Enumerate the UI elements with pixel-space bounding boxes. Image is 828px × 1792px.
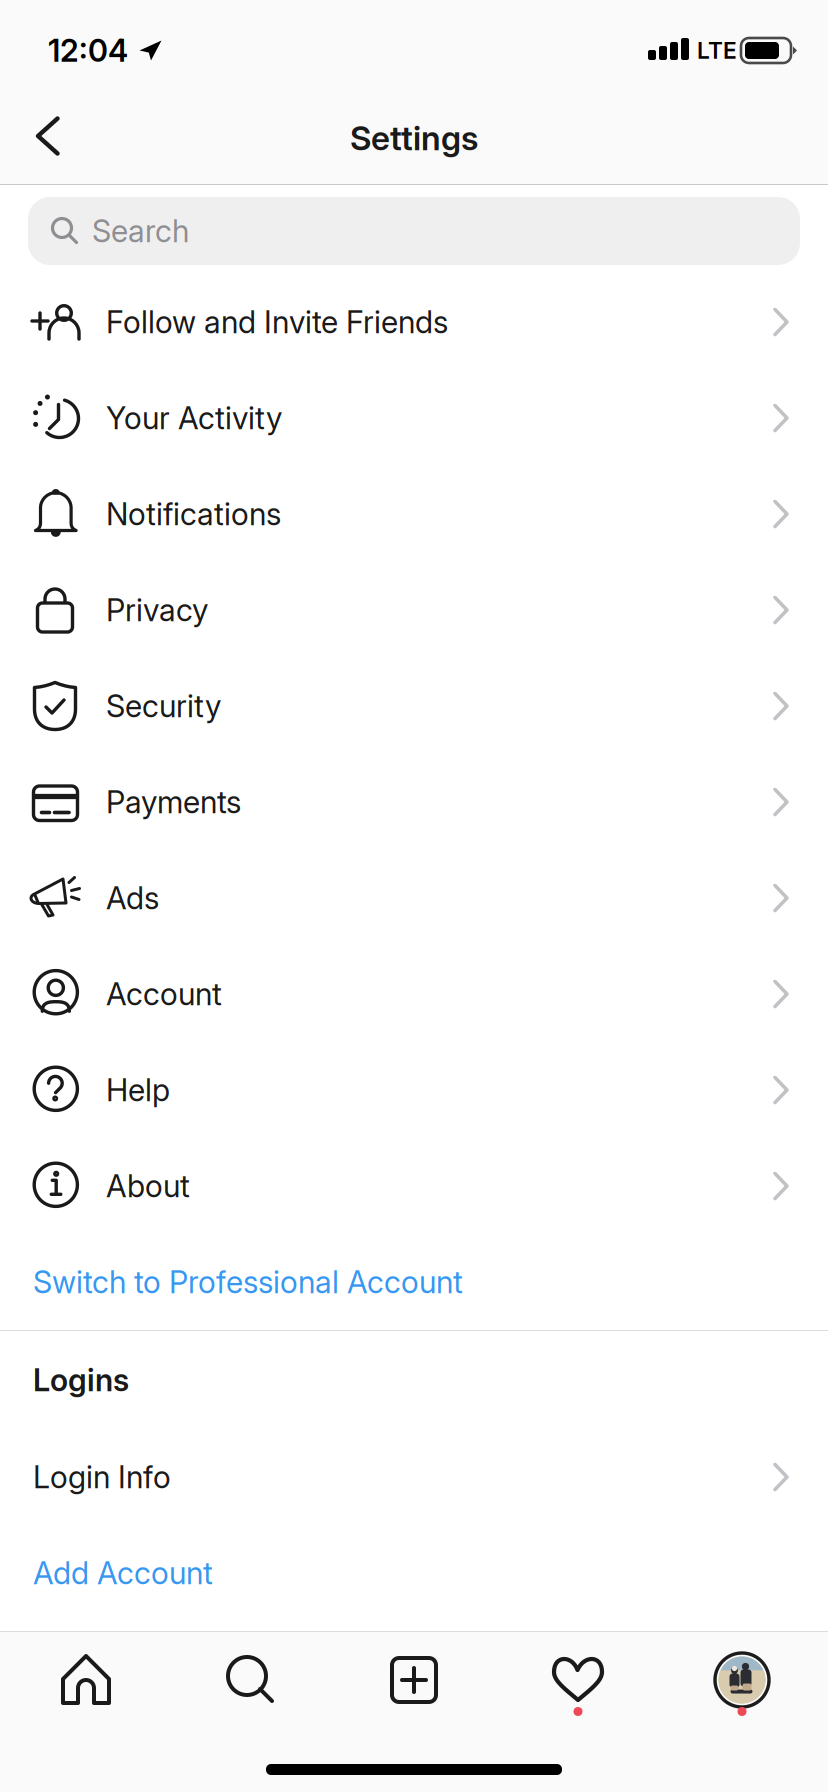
button[interactable]: Help (0, 1042, 828, 1138)
button[interactable]: Follow and Invite Friends (0, 274, 828, 370)
staticText: Privacy (106, 591, 208, 628)
staticText: Your Activity (106, 399, 282, 436)
staticText: Add Account (33, 1554, 213, 1591)
staticText: Search (92, 212, 189, 249)
button[interactable]: Ads (0, 850, 828, 946)
staticText: 12:04 (48, 32, 128, 69)
staticText: Logins (33, 1361, 129, 1398)
button[interactable]: Security (0, 658, 828, 754)
staticText: LTE (697, 37, 737, 64)
button[interactable]: Your Activity (0, 370, 828, 466)
staticText: Payments (106, 783, 241, 820)
button[interactable]: Add Account (0, 1525, 828, 1621)
staticText: Notifications (106, 495, 281, 532)
button[interactable]: Activity (496, 1632, 660, 1728)
staticText: Switch to Professional Account (33, 1263, 463, 1300)
staticText: Security (106, 687, 221, 724)
button[interactable]: Back (0, 92, 84, 184)
button[interactable]: Switch to Professional Account (0, 1234, 828, 1330)
staticText: Login Info (33, 1458, 171, 1495)
button[interactable]: Notifications (0, 466, 828, 562)
staticText: Ads (106, 879, 159, 916)
button[interactable]: Login Info (0, 1429, 828, 1525)
button[interactable]: About (0, 1138, 828, 1234)
button[interactable]: Search (168, 1632, 332, 1728)
staticText: Account (106, 975, 222, 1012)
button[interactable]: Account (0, 946, 828, 1042)
button[interactable]: Payments (0, 754, 828, 850)
button[interactable]: Profile (660, 1632, 824, 1728)
staticText: About (106, 1167, 190, 1204)
staticText: Settings (350, 118, 478, 158)
button[interactable]: New post (332, 1632, 496, 1728)
button[interactable]: Home (4, 1632, 168, 1728)
staticText: Help (106, 1071, 170, 1108)
button[interactable]: Privacy (0, 562, 828, 658)
staticText: Follow and Invite Friends (106, 303, 448, 340)
